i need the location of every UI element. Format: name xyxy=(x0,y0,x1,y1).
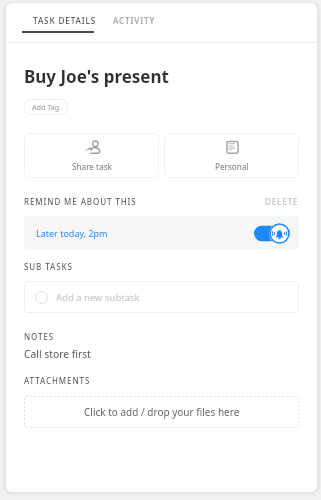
button[interactable]: Share task xyxy=(24,133,159,178)
staticText: Personal xyxy=(215,161,249,172)
staticText: ACTIVITY xyxy=(113,15,156,26)
staticText: DELETE xyxy=(265,196,299,207)
button[interactable]: Later today, 2pm xyxy=(24,216,299,250)
staticText: REMIND ME ABOUT THIS xyxy=(24,196,137,207)
staticText: NOTES xyxy=(24,331,55,342)
button[interactable]: Click to add / drop your files here xyxy=(24,396,299,428)
staticText: Add Tag xyxy=(32,102,60,112)
staticText: Later today, 2pm xyxy=(36,227,108,239)
staticText: ATTACHMENTS xyxy=(24,375,91,386)
button[interactable]: Add Tag xyxy=(24,99,68,115)
button[interactable]: ACTIVITY xyxy=(107,10,162,31)
staticText: Buy Joe's present xyxy=(24,65,169,88)
staticText: Call store first xyxy=(24,347,91,361)
button[interactable]: Personal xyxy=(164,133,299,178)
staticText: SUB TASKS xyxy=(24,261,73,272)
staticText: Add a new subtask xyxy=(56,291,140,304)
button[interactable]: DELETE xyxy=(265,196,299,207)
staticText: Click to add / drop your files here xyxy=(84,405,240,419)
button[interactable]: Add a new subtask xyxy=(24,281,299,313)
staticText: TASK DETAILS xyxy=(33,15,97,26)
staticText: Share task xyxy=(72,161,112,172)
button[interactable]: Toggle reminder xyxy=(254,223,290,244)
button[interactable]: TASK DETAILS xyxy=(27,10,103,31)
